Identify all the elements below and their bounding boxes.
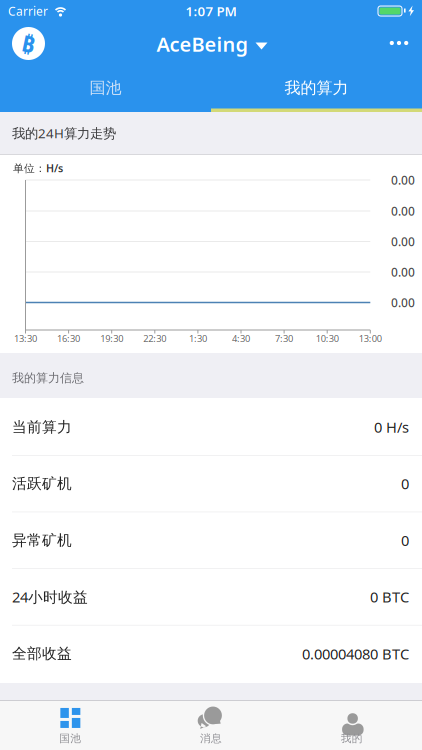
staticText: 0 BTC bbox=[370, 587, 409, 607]
button[interactable]: AceBeing bbox=[156, 31, 267, 57]
staticText: 0 H/s bbox=[374, 417, 409, 437]
button[interactable]: 24小时收益 bbox=[0, 569, 422, 625]
staticText: 0.00004080 BTC bbox=[302, 644, 409, 663]
button[interactable]: 异常矿机 bbox=[0, 512, 422, 568]
staticText: 13:30 bbox=[14, 332, 37, 345]
button[interactable]: 我的算力 bbox=[211, 64, 422, 108]
staticText: 我的 bbox=[341, 732, 363, 745]
staticText: 我的算力 bbox=[284, 78, 348, 98]
button[interactable]: 消息 bbox=[141, 701, 281, 750]
button[interactable]: More bbox=[390, 41, 408, 45]
staticText: 0.00 bbox=[391, 294, 415, 310]
button[interactable]: 当前算力 bbox=[0, 399, 422, 455]
button[interactable]: 全部收益 bbox=[0, 625, 422, 682]
staticText: 我的24H算力走势 bbox=[12, 124, 116, 142]
staticText: 22:30 bbox=[143, 332, 166, 345]
staticText: 0.00 bbox=[391, 233, 415, 249]
staticText: 13:00 bbox=[359, 332, 382, 345]
staticText: 7:30 bbox=[275, 332, 293, 345]
staticText: 1:30 bbox=[189, 332, 207, 345]
staticText: 当前算力 bbox=[12, 418, 72, 436]
button[interactable]: 我的 bbox=[281, 701, 422, 750]
staticText: 19:30 bbox=[100, 332, 123, 345]
staticText: 10:30 bbox=[316, 332, 339, 345]
staticText: 国池 bbox=[59, 732, 81, 745]
staticText: 活跃矿机 bbox=[12, 475, 72, 493]
button[interactable]: 活跃矿机 bbox=[0, 456, 422, 512]
staticText: 1:07 PM bbox=[185, 2, 236, 20]
button[interactable]: 国池 bbox=[0, 701, 141, 750]
staticText: 国池 bbox=[89, 78, 121, 98]
staticText: 异常矿机 bbox=[12, 531, 72, 549]
staticText: ₿ bbox=[22, 28, 35, 58]
staticText: 全部收益 bbox=[12, 645, 72, 663]
staticText: 0.00 bbox=[391, 203, 415, 219]
staticText: 0.00 bbox=[391, 264, 415, 280]
staticText: 24小时收益 bbox=[12, 587, 88, 607]
button[interactable]: Bitcoin bbox=[12, 27, 45, 60]
staticText: 0.00 bbox=[391, 172, 415, 188]
staticText: 单位：H/s bbox=[13, 161, 63, 175]
button[interactable]: 国池 bbox=[0, 64, 211, 108]
staticText: AceBeing bbox=[156, 31, 248, 57]
staticText: 0 bbox=[401, 474, 409, 493]
staticText: 4:30 bbox=[232, 332, 250, 345]
staticText: Carrier bbox=[8, 3, 48, 19]
staticText: 0 bbox=[401, 530, 409, 550]
staticText: 我的算力信息 bbox=[12, 371, 84, 385]
staticText: 消息 bbox=[200, 732, 222, 745]
staticText: 16:30 bbox=[57, 332, 80, 345]
